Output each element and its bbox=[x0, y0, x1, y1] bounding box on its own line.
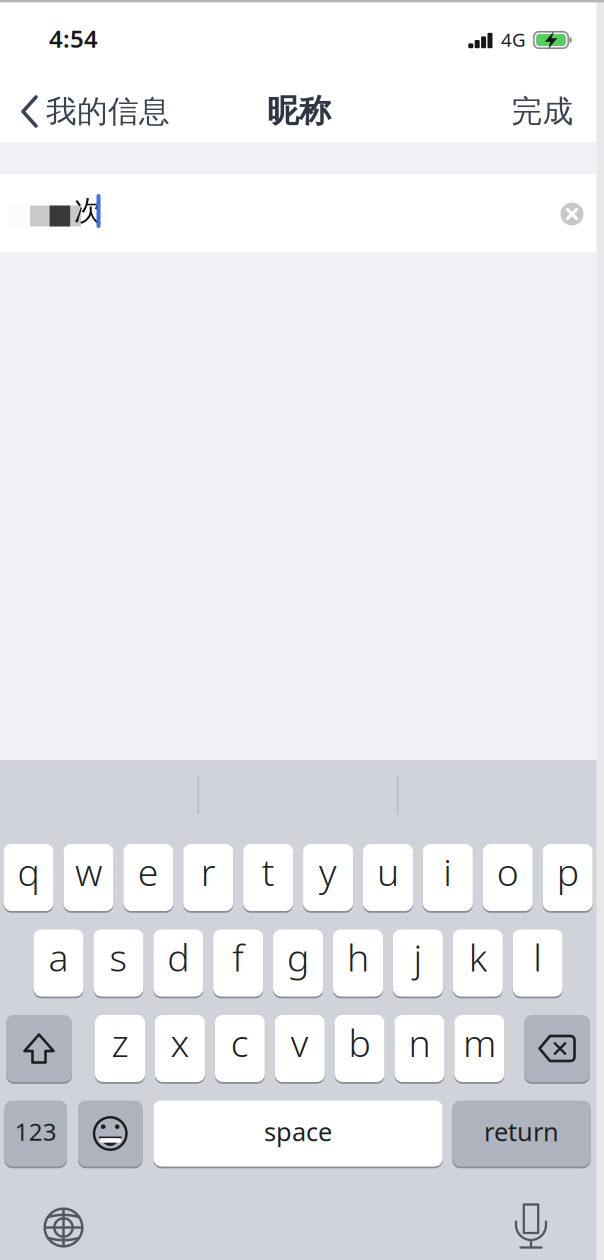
button[interactable]: c bbox=[215, 1015, 265, 1082]
button[interactable]: e bbox=[123, 844, 173, 911]
button[interactable]: h bbox=[333, 929, 383, 996]
staticText: q bbox=[18, 847, 40, 896]
staticText: a bbox=[48, 932, 68, 982]
button[interactable]: y bbox=[303, 844, 353, 911]
button[interactable]: a bbox=[33, 929, 83, 996]
staticText: z bbox=[111, 1018, 128, 1067]
button[interactable]: q bbox=[4, 844, 54, 911]
staticText: w bbox=[75, 847, 102, 896]
staticText: f bbox=[232, 932, 244, 982]
staticText: r bbox=[201, 847, 216, 896]
button[interactable]: b bbox=[335, 1015, 385, 1082]
button[interactable]: u bbox=[363, 844, 413, 911]
staticText: x bbox=[170, 1018, 189, 1067]
staticText: t bbox=[262, 847, 275, 896]
staticText: v bbox=[291, 1018, 309, 1067]
button[interactable]: j bbox=[393, 929, 443, 996]
button[interactable]: l bbox=[513, 929, 563, 996]
staticText: return bbox=[484, 1115, 559, 1148]
staticText: j bbox=[413, 932, 422, 982]
staticText: k bbox=[469, 932, 487, 982]
button[interactable]: w bbox=[63, 844, 113, 911]
button[interactable]: n bbox=[394, 1015, 444, 1082]
staticText: 4G bbox=[501, 27, 526, 52]
button[interactable] bbox=[507, 1202, 555, 1250]
staticText: 昵称 bbox=[267, 91, 331, 131]
staticText: m bbox=[463, 1018, 496, 1067]
button[interactable]: i bbox=[423, 844, 473, 911]
button[interactable]: space bbox=[153, 1100, 443, 1166]
button[interactable] bbox=[39, 1203, 87, 1251]
staticText: 123 bbox=[15, 1116, 57, 1147]
button[interactable]: s bbox=[93, 929, 143, 996]
staticText: n bbox=[408, 1018, 430, 1067]
staticText: 完成 bbox=[511, 93, 573, 130]
staticText: h bbox=[347, 932, 369, 982]
button[interactable]: x bbox=[155, 1015, 205, 1082]
staticText: d bbox=[167, 932, 189, 982]
button[interactable]: t bbox=[243, 844, 293, 911]
button[interactable]: m bbox=[454, 1015, 504, 1082]
staticText: b bbox=[349, 1018, 371, 1067]
staticText: u bbox=[377, 847, 399, 896]
button[interactable]: f bbox=[213, 929, 263, 996]
button[interactable]: g bbox=[273, 929, 323, 996]
button[interactable]: k bbox=[453, 929, 503, 996]
button[interactable] bbox=[78, 1100, 142, 1166]
button[interactable]: p bbox=[543, 844, 593, 911]
staticText: g bbox=[287, 932, 309, 982]
button[interactable]: 123 bbox=[4, 1100, 67, 1166]
button[interactable]: r bbox=[183, 844, 233, 911]
button[interactable]: o bbox=[483, 844, 533, 911]
staticText: 4:54 bbox=[49, 23, 98, 54]
staticText: y bbox=[319, 847, 337, 896]
button[interactable]: 次 bbox=[0, 174, 604, 252]
staticText: o bbox=[497, 847, 519, 896]
staticText: e bbox=[138, 847, 159, 896]
button[interactable]: z bbox=[95, 1015, 145, 1082]
staticText: 我的信息 bbox=[46, 93, 170, 130]
button[interactable]: 我的信息 bbox=[21, 89, 173, 133]
button[interactable]: d bbox=[153, 929, 203, 996]
button[interactable] bbox=[560, 202, 583, 225]
staticText: i bbox=[443, 847, 452, 896]
staticText: p bbox=[557, 847, 579, 896]
button[interactable]: v bbox=[275, 1015, 325, 1082]
staticText: c bbox=[231, 1018, 249, 1067]
button[interactable] bbox=[6, 1015, 72, 1082]
staticText: l bbox=[533, 932, 542, 982]
staticText: 次 bbox=[74, 194, 102, 228]
button[interactable] bbox=[524, 1015, 590, 1082]
button[interactable]: return bbox=[452, 1100, 591, 1166]
staticText: space bbox=[264, 1115, 332, 1148]
button[interactable]: 完成 bbox=[502, 89, 582, 133]
staticText: s bbox=[109, 932, 127, 982]
